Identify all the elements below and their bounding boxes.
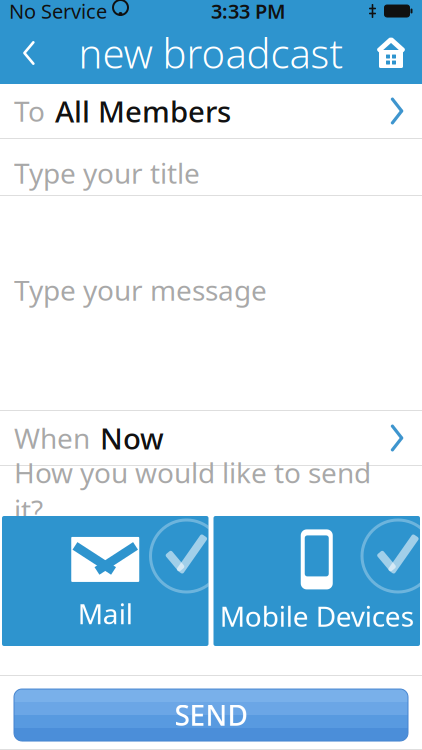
button[interactable]: Mobile Devices: [213, 516, 420, 646]
button[interactable]: Back: [0, 22, 58, 84]
staticText: 3:33 PM: [211, 0, 286, 24]
staticText: Mobile Devices: [220, 597, 414, 635]
staticText: To: [14, 92, 45, 130]
staticText: No Service: [9, 0, 107, 24]
staticText: Now: [100, 418, 164, 457]
staticText: When: [14, 419, 90, 457]
staticText: SEND: [174, 696, 247, 734]
staticText: Type your message: [14, 271, 267, 309]
staticText: new broadcast: [78, 26, 343, 79]
staticText: How you would like to send it?: [14, 454, 371, 528]
staticText: All Members: [55, 91, 231, 130]
button[interactable]: To: [0, 84, 422, 138]
staticText: Mail: [78, 595, 133, 632]
button[interactable]: Type your title: [0, 139, 422, 195]
button[interactable]: SEND: [14, 689, 408, 741]
button[interactable]: When: [0, 411, 422, 465]
staticText: Type your title: [14, 154, 200, 192]
button[interactable]: Type your message: [0, 196, 422, 372]
button[interactable]: Home: [360, 22, 422, 84]
button[interactable]: Mail: [2, 516, 208, 646]
